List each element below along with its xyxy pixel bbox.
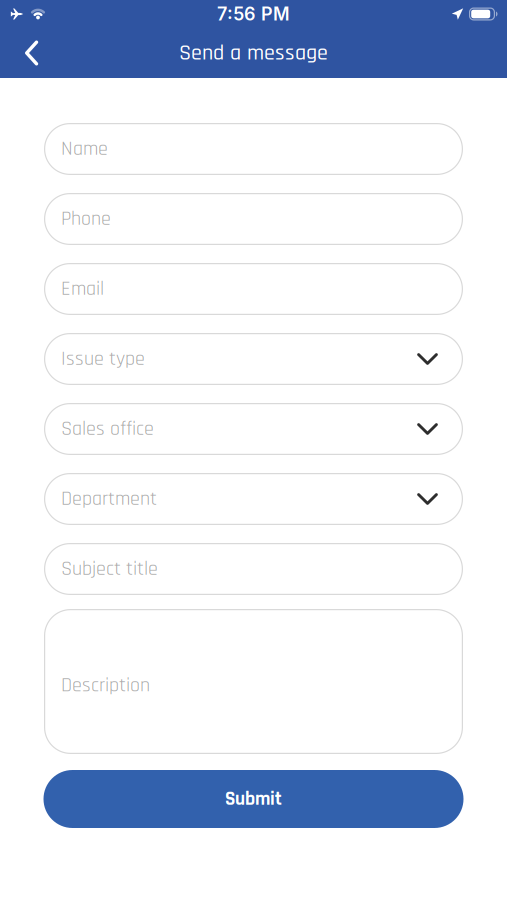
staticText: Phone bbox=[61, 206, 111, 232]
staticText: Subject title bbox=[61, 556, 158, 582]
staticText: 7:56 PM bbox=[217, 3, 290, 25]
staticText: Issue type bbox=[61, 346, 145, 372]
staticText: Email bbox=[61, 276, 104, 302]
staticText: Department bbox=[61, 486, 157, 512]
staticText: Description bbox=[61, 673, 150, 698]
staticText: Submit bbox=[225, 787, 282, 811]
staticText: Send a message bbox=[179, 39, 328, 67]
staticText: Sales office bbox=[61, 416, 154, 442]
staticText: Name bbox=[61, 136, 108, 162]
